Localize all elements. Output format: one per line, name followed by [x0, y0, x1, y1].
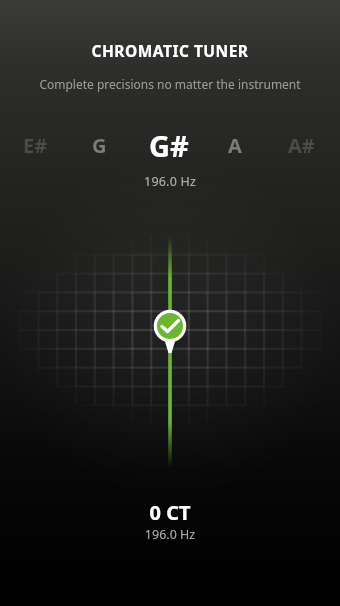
staticText: 196.0 Hz	[0, 173, 340, 190]
staticText: E#	[23, 132, 48, 159]
staticText: 196.0 Hz	[0, 526, 340, 543]
button[interactable]: A	[203, 125, 267, 165]
staticText: 0 CT	[0, 499, 340, 526]
button[interactable]: G	[67, 125, 131, 165]
button[interactable]: G#	[137, 125, 201, 165]
staticText: G#	[149, 126, 189, 165]
staticText: CHROMATIC TUNER	[0, 40, 340, 61]
button[interactable]: A#	[269, 125, 333, 165]
staticText: A#	[288, 132, 315, 159]
button[interactable]: E#	[3, 125, 67, 165]
staticText: G	[92, 132, 107, 159]
staticText: A	[228, 132, 242, 159]
staticText: Complete precisions no matter the instru…	[0, 76, 340, 92]
